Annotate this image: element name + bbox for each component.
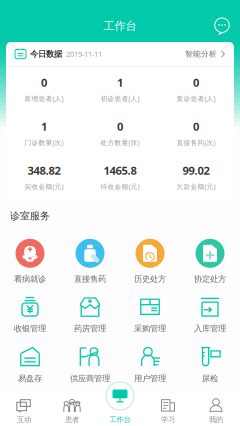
staticText: 今日数据: [30, 49, 62, 59]
staticText: 99.02: [182, 163, 209, 178]
staticText: 实收金额(元): [24, 182, 63, 191]
staticText: 新增患者(人): [24, 94, 63, 103]
staticText: 智能分析: [185, 49, 217, 59]
staticText: 工作台: [109, 415, 130, 424]
button[interactable]: 看病就诊: [0, 239, 60, 284]
staticText: 0: [41, 75, 47, 90]
button[interactable]: 直接售药: [60, 239, 120, 284]
staticText: 1: [117, 75, 123, 90]
staticText: 我的: [209, 415, 223, 424]
staticText: 供应商管理: [70, 373, 110, 384]
button[interactable]: 采购管理: [120, 296, 180, 334]
button[interactable]: 学习: [144, 399, 192, 424]
staticText: 1465.8: [103, 163, 136, 178]
staticText: 直接售药: [74, 274, 106, 284]
staticText: 348.82: [27, 163, 60, 178]
staticText: 入库管理: [194, 323, 226, 334]
button[interactable]: 易盘存: [0, 346, 60, 384]
button[interactable]: 协定处方: [180, 239, 240, 284]
button[interactable]: 收银管理: [0, 296, 60, 334]
button[interactable]: 用户管理: [120, 346, 180, 384]
staticText: 处方数量(张): [100, 138, 139, 147]
button[interactable]: 消息: [214, 8, 240, 34]
staticText: 工作台: [103, 19, 136, 33]
button[interactable]: 我的: [192, 399, 240, 424]
button[interactable]: 历史处方: [120, 239, 180, 284]
button[interactable]: 互动: [0, 399, 48, 424]
staticText: 互动: [17, 415, 31, 424]
staticText: 1: [41, 119, 47, 134]
button[interactable]: 患者: [48, 399, 96, 424]
staticText: 尿检: [202, 373, 218, 384]
staticText: 0: [117, 119, 123, 134]
button[interactable]: 药房管理: [60, 296, 120, 334]
button[interactable]: 智能分析: [185, 49, 225, 59]
button[interactable]: 尿检: [180, 346, 240, 384]
button[interactable]: 供应商管理: [60, 346, 120, 384]
staticText: 待收金额(元): [100, 182, 139, 191]
staticText: 药房管理: [74, 323, 106, 334]
staticText: 历史处方: [134, 274, 166, 284]
staticText: 患者: [65, 415, 79, 424]
staticText: 协定处方: [194, 274, 226, 284]
button[interactable]: 工作台: [106, 382, 134, 410]
staticText: 诊室服务: [10, 210, 50, 222]
staticText: 0: [193, 75, 199, 90]
staticText: 直接售药(次): [176, 138, 215, 147]
staticText: 欠款金额(元): [176, 182, 215, 191]
staticText: 采购管理: [134, 323, 166, 334]
staticText: 0: [193, 119, 199, 134]
staticText: 学习: [161, 415, 175, 424]
button[interactable]: 入库管理: [180, 296, 240, 334]
staticText: 2019-11-11: [66, 49, 102, 59]
button[interactable]: 工作台: [96, 399, 144, 424]
staticText: 用户管理: [134, 373, 166, 384]
staticText: 复诊患者(人): [176, 94, 215, 103]
staticText: 收银管理: [14, 323, 46, 334]
staticText: 门诊数量(次): [24, 138, 63, 147]
staticText: 初诊患者(人): [100, 94, 139, 103]
staticText: 看病就诊: [14, 274, 46, 284]
staticText: 易盘存: [18, 373, 42, 384]
